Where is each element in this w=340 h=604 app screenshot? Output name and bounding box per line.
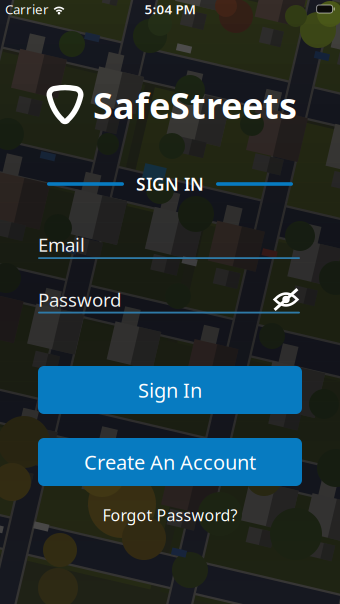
staticText: Forgot Password? [102, 504, 237, 526]
button[interactable]: Show password [272, 286, 300, 312]
staticText: Create An Account [84, 449, 256, 475]
staticText: Carrier [5, 0, 49, 18]
button[interactable]: Sign In [38, 366, 302, 414]
staticText: Email [38, 232, 85, 257]
staticText: 5:04 PM [144, 0, 195, 18]
staticText: SafeStreets [93, 81, 297, 129]
staticText: SIGN IN [136, 172, 204, 195]
button[interactable]: Forgot Password? [88, 498, 251, 532]
button[interactable]: Create An Account [38, 438, 302, 486]
staticText: Password [38, 287, 121, 312]
staticText: Sign In [138, 377, 202, 403]
